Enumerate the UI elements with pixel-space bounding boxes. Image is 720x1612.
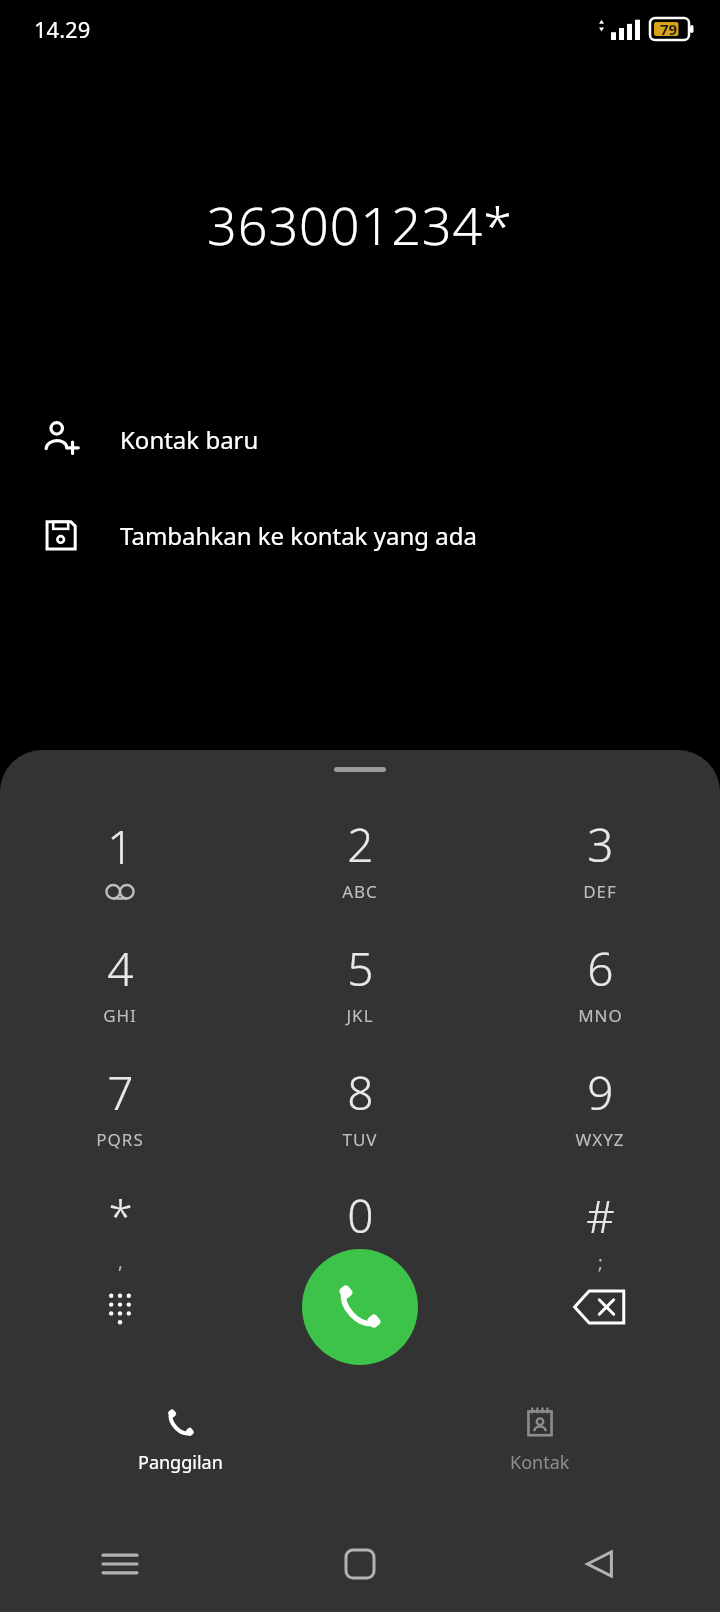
button[interactable]: 0 [240,1168,480,1292]
staticText: 9 [587,1061,614,1124]
button[interactable]: 6 [480,920,720,1044]
staticText: DEF [583,880,617,903]
staticText: 7 [107,1061,134,1124]
button[interactable]: Call [302,1249,418,1365]
staticText: 2 [347,813,374,876]
staticText: 79 [660,19,678,39]
button[interactable]: 5 [240,920,480,1044]
staticText: 1 [107,815,134,878]
button[interactable]: 3 [480,796,720,920]
button[interactable]: Kontak [360,1390,720,1490]
staticText: 363001234* [207,189,513,260]
staticText: GHI [103,1004,137,1027]
staticText: 3 [587,813,614,876]
button[interactable]: Keypad [0,1245,240,1369]
button[interactable]: Kontak baru [0,404,720,474]
staticText: 6 [587,937,614,1000]
staticText: ; [598,1250,604,1275]
staticText: ABC [342,880,378,903]
staticText: Kontak [510,1450,570,1475]
staticText: JKL [346,1004,374,1027]
staticText: PQRS [96,1128,144,1151]
button[interactable]: 2 [240,796,480,920]
staticText: 8 [347,1061,374,1124]
button[interactable]: # [480,1168,720,1292]
button[interactable]: Tambahkan ke kontak yang ada [0,500,720,570]
button[interactable]: 4 [0,920,240,1044]
button[interactable]: * [0,1168,240,1292]
button[interactable]: Back [480,1516,720,1612]
button[interactable]: 9 [480,1044,720,1168]
staticText: TUV [342,1128,378,1151]
button[interactable]: Recent apps [0,1516,240,1612]
staticText: 14.29 [34,14,91,44]
button[interactable]: Backspace [480,1245,720,1369]
staticText: 0 [347,1184,374,1247]
button[interactable]: 8 [240,1044,480,1168]
staticText: * [108,1186,133,1246]
staticText: WXYZ [575,1128,625,1151]
staticText: , [118,1250,124,1275]
button[interactable]: 1 [0,796,240,920]
staticText: 5 [347,937,374,1000]
staticText: Kontak baru [120,423,259,456]
button[interactable]: Home [240,1516,480,1612]
staticText: Tambahkan ke kontak yang ada [120,519,477,552]
staticText: MNO [578,1004,623,1027]
button[interactable]: Panggilan [0,1390,360,1490]
staticText: Panggilan [138,1450,223,1475]
button[interactable]: 7 [0,1044,240,1168]
staticText: 4 [107,937,134,1000]
staticText: # [586,1186,615,1246]
